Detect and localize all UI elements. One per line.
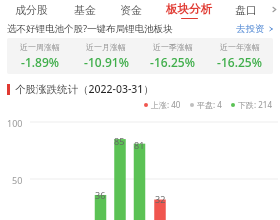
staticText: 85 <box>114 135 125 147</box>
staticText: 资金 <box>120 3 142 17</box>
button[interactable]: 基金 <box>62 0 108 19</box>
staticText: 下跌: 214 <box>238 99 272 110</box>
button[interactable]: 资金 <box>108 0 154 19</box>
staticText: 平盘: 4 <box>197 99 222 110</box>
button[interactable]: 盘口 <box>224 0 268 19</box>
staticText: 100 <box>7 117 23 129</box>
staticText: 基金 <box>74 3 96 17</box>
staticText: 32 <box>155 193 166 205</box>
staticText: -16.25% <box>217 54 262 70</box>
button[interactable]: 近一周涨幅 <box>7 38 273 74</box>
staticText: 成分股 <box>15 3 48 17</box>
staticText: 近一年涨幅 <box>220 42 260 52</box>
staticText: 50 <box>12 174 23 186</box>
staticText: -16.25% <box>150 54 195 70</box>
button[interactable]: More tabs <box>268 0 280 19</box>
staticText: -10.91% <box>84 54 129 70</box>
staticText: 盘口 <box>235 3 257 17</box>
staticText: 近一月涨幅 <box>86 42 126 52</box>
staticText: 选不好锂电池个股?一键布局锂电池板块 <box>7 22 173 35</box>
staticText: 36 <box>95 189 106 201</box>
staticText: 上涨: 40 <box>151 99 181 110</box>
staticText: 近一季涨幅 <box>153 42 193 52</box>
staticText: 81 <box>134 139 145 151</box>
staticText: 个股涨跌统计（2022-03-31） <box>15 82 154 96</box>
staticText: -1.89% <box>21 54 59 70</box>
staticText: 近一周涨幅 <box>20 42 60 52</box>
staticText: 去投资 <box>236 23 265 35</box>
button[interactable]: 选不好锂电池个股?一键布局锂电池板块 <box>0 19 280 38</box>
staticText: 板块分析 <box>166 2 212 16</box>
button[interactable]: 板块分析 <box>154 0 224 19</box>
button[interactable]: 成分股 <box>0 0 62 19</box>
